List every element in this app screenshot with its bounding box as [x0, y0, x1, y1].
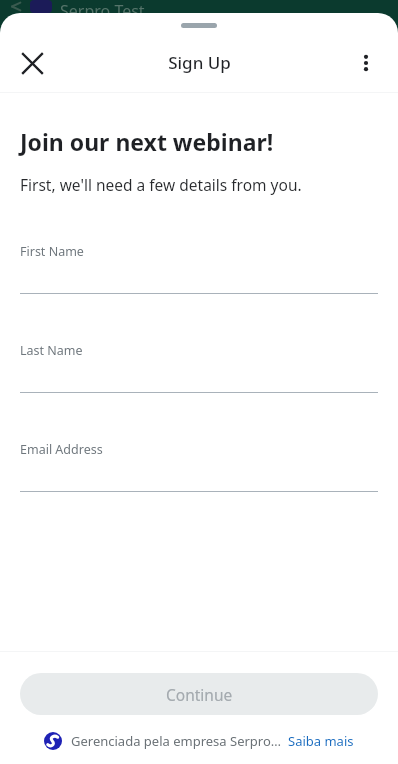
staticText: Sign Up [168, 51, 231, 74]
button[interactable]: Last Name [0, 342, 398, 393]
button[interactable]: More options [342, 39, 390, 87]
button[interactable]: Saiba mais [288, 732, 354, 750]
staticText: Gerenciada pela empresa Serpro… [71, 732, 282, 750]
button[interactable]: Gerenciada pela empresa Serpro… [0, 732, 398, 750]
button[interactable]: Close [8, 39, 56, 87]
staticText: Email Address [20, 441, 103, 458]
staticText: Serpro Test [60, 0, 145, 13]
button[interactable]: Email Address [0, 441, 398, 492]
staticText: First Name [20, 243, 84, 260]
staticText: Last Name [20, 342, 83, 359]
staticText: Join our next webinar! [20, 126, 274, 157]
button[interactable]: First Name [0, 243, 398, 294]
staticText: First, we'll need a few details from you… [20, 174, 302, 195]
staticText: Continue [166, 684, 233, 705]
button[interactable]: Continue [20, 673, 378, 715]
